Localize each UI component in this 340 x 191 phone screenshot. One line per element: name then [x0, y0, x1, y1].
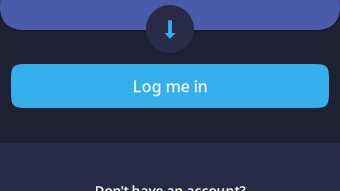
button[interactable]: Scroll down [146, 5, 194, 53]
button[interactable]: Don't have an account? [0, 183, 340, 191]
staticText: Don't have an account? [94, 181, 245, 191]
staticText: Log me in [132, 75, 207, 97]
button[interactable]: Log me in [11, 64, 329, 108]
